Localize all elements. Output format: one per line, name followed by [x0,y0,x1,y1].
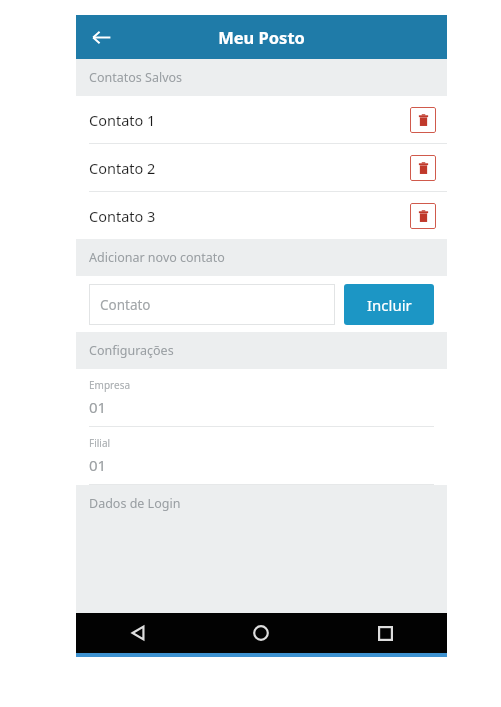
button[interactable]: Incluir [344,284,434,325]
staticText: 01 [89,397,107,417]
staticText: Configurações [89,342,174,359]
button[interactable]: Contato 2 [76,144,447,191]
button[interactable]: Excluir Contato 1 [410,107,436,133]
staticText: Contatos Salvos [89,69,183,86]
button[interactable]: Voltar [82,18,120,56]
staticText: Contato [100,296,151,314]
button[interactable]: Recentes [323,613,447,653]
staticText: Filial [89,436,111,450]
staticText: Meu Posto [218,26,305,48]
staticText: Adicionar novo contato [89,249,225,266]
button[interactable]: Voltar [76,613,199,653]
button[interactable]: Contato 3 [76,192,447,239]
staticText: Dados de Login [89,495,181,512]
button[interactable]: Empresa [76,369,447,427]
staticText: Empresa [89,378,131,392]
staticText: Contato 3 [89,206,410,226]
staticText: Incluir [367,295,412,315]
staticText: Contato 1 [89,110,410,130]
button[interactable]: Início [199,613,323,653]
staticText: Contato 2 [89,158,410,178]
button[interactable]: Excluir Contato 2 [410,155,436,181]
button[interactable]: Excluir Contato 3 [410,203,436,229]
button[interactable]: Contato [89,284,335,325]
button[interactable]: Contato 1 [76,96,447,143]
button[interactable]: Filial [76,427,447,485]
staticText: 01 [89,455,107,475]
